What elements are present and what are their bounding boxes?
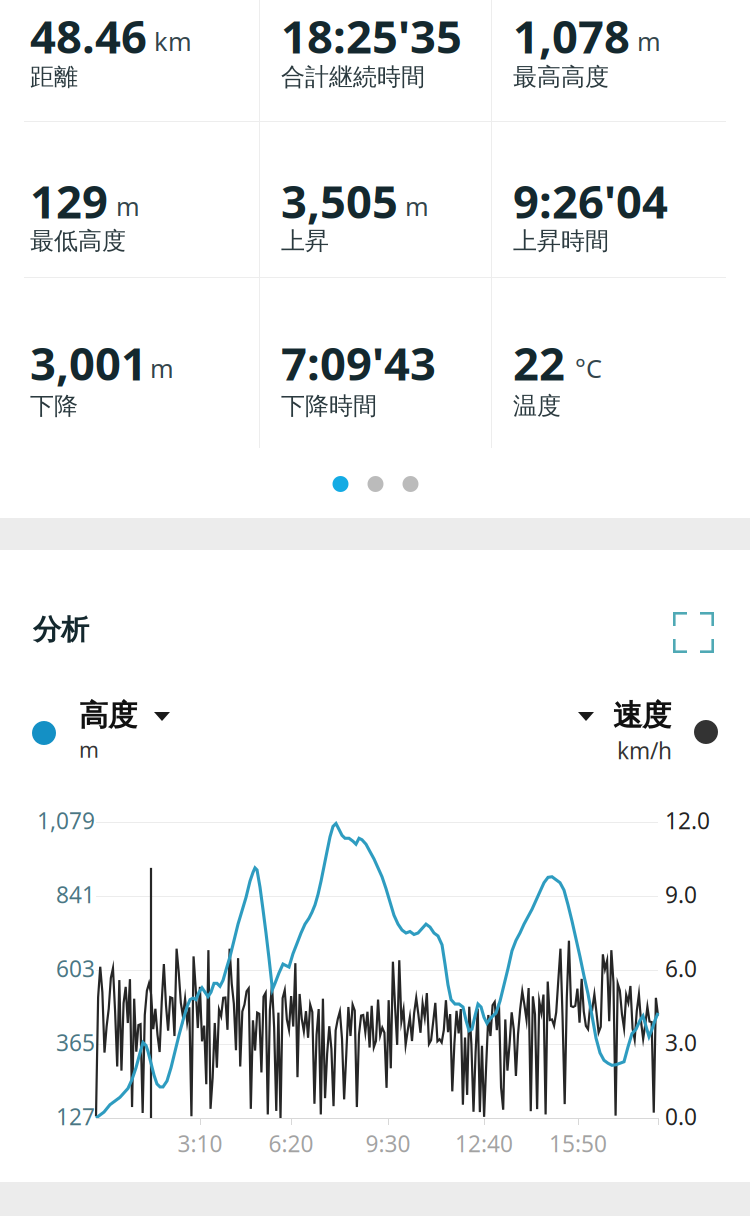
staticText: 9:26'04	[513, 170, 668, 232]
staticText: m	[116, 189, 140, 223]
staticText: 841	[56, 879, 95, 910]
staticText: 1,078	[513, 5, 630, 67]
staticText: km/h	[617, 735, 672, 766]
button[interactable]: グラフを拡大	[673, 612, 714, 653]
staticText: 9:30	[365, 1128, 410, 1159]
staticText: 1,079	[37, 805, 95, 836]
staticText: 3,001	[30, 332, 147, 394]
staticText: 48.46	[30, 5, 147, 67]
staticText: 距離	[30, 62, 78, 92]
staticText: 合計継続時間	[281, 62, 425, 92]
staticText: 7:09'43	[281, 332, 436, 394]
staticText: 6.0	[665, 953, 697, 984]
staticText: 12:40	[455, 1128, 513, 1159]
staticText: 分析	[33, 612, 89, 647]
staticText: 高度	[79, 697, 137, 734]
staticText: 下降時間	[281, 391, 377, 421]
button[interactable]: 速度	[570, 692, 722, 762]
staticText: 速度	[613, 697, 671, 734]
button[interactable]: ページ 3	[393, 466, 428, 502]
staticText: 最高高度	[513, 62, 609, 92]
staticText: km	[154, 24, 192, 58]
staticText: 12.0	[665, 805, 710, 836]
button[interactable]: 高度	[28, 692, 174, 762]
staticText: 603	[56, 953, 95, 984]
staticText: 上昇	[281, 226, 329, 256]
staticText: m	[405, 189, 429, 223]
staticText: 9.0	[665, 879, 697, 910]
staticText: m	[637, 24, 661, 58]
staticText: 3,505	[281, 170, 398, 232]
staticText: 15:50	[549, 1128, 607, 1159]
staticText: 0.0	[665, 1101, 697, 1132]
staticText: °C	[575, 351, 602, 385]
staticText: 127	[56, 1101, 95, 1132]
staticText: 365	[56, 1027, 95, 1058]
staticText: 129	[30, 170, 108, 232]
button[interactable]: ページ 1	[323, 466, 358, 502]
staticText: 3.0	[665, 1027, 697, 1058]
staticText: m	[79, 735, 99, 764]
staticText: 上昇時間	[513, 226, 609, 256]
staticText: 3:10	[177, 1128, 222, 1159]
staticText: 18:25'35	[281, 5, 462, 67]
button[interactable]: ページ 2	[358, 466, 393, 502]
staticText: m	[150, 351, 174, 385]
staticText: 温度	[513, 391, 561, 421]
staticText: 最低高度	[30, 226, 126, 256]
staticText: 下降	[30, 391, 78, 421]
staticText: 6:20	[268, 1128, 313, 1159]
staticText: 22	[513, 332, 565, 394]
